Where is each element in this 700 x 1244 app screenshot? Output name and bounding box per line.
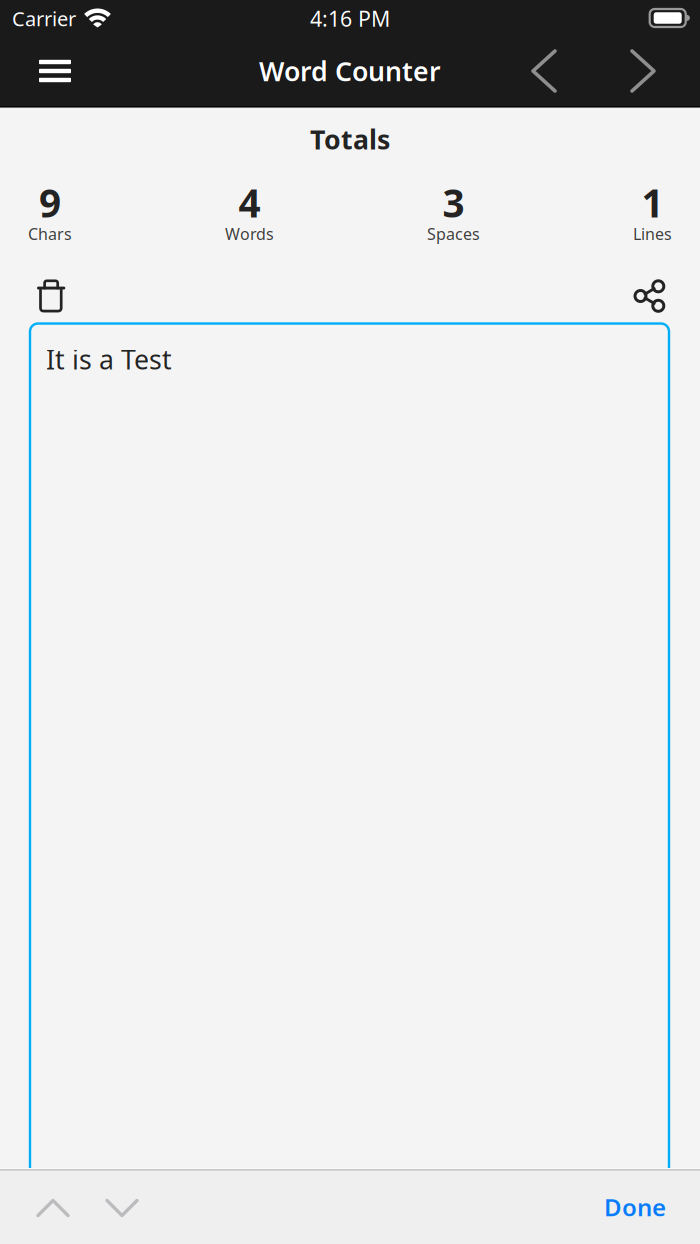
staticText: 3: [442, 177, 464, 228]
button[interactable]: Menu: [24, 47, 86, 95]
staticText: Carrier: [12, 5, 76, 32]
staticText: Spaces: [427, 223, 480, 244]
staticText: 9: [39, 177, 61, 228]
staticText: Word Counter: [259, 53, 441, 89]
staticText: Lines: [633, 223, 672, 244]
staticText: Words: [225, 223, 274, 244]
staticText: 4: [238, 177, 260, 228]
button[interactable]: Share: [635, 280, 664, 312]
button[interactable]: Back: [533, 41, 632, 101]
staticText: It is a Test: [46, 341, 172, 377]
staticText: Totals: [310, 121, 390, 157]
staticText: Chars: [28, 223, 72, 244]
button[interactable]: Next field: [80, 1181, 149, 1230]
staticText: 4:16 PM: [310, 4, 390, 33]
button[interactable]: Done: [594, 1177, 676, 1235]
button[interactable]: Clear text: [37, 279, 65, 312]
button[interactable]: Previous field: [26, 1181, 80, 1230]
staticText: Done: [604, 1191, 666, 1223]
button[interactable]: Forward: [632, 41, 675, 101]
staticText: 1: [641, 177, 663, 228]
